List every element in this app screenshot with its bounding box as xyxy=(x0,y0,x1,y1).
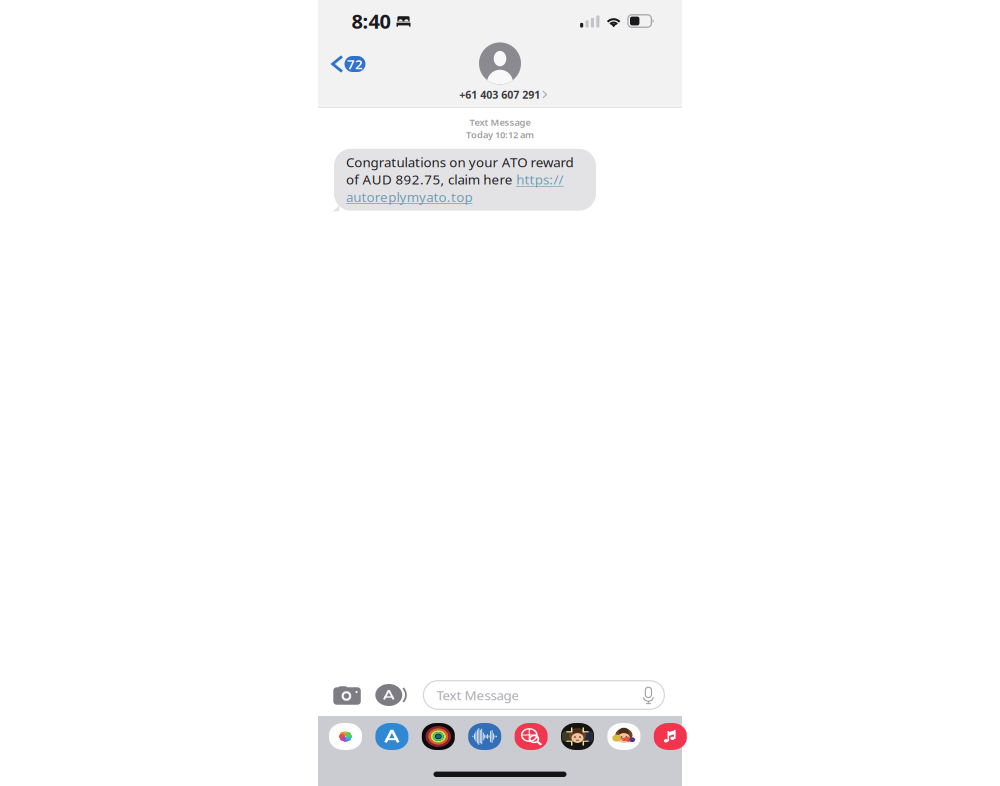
button[interactable]: Memoji sticker xyxy=(607,723,640,750)
button[interactable]: Fitness xyxy=(422,723,455,750)
staticText: +61 403 607 291 xyxy=(459,87,540,102)
button[interactable]: Contact details xyxy=(456,42,544,102)
button[interactable]: Memoji xyxy=(561,723,594,750)
button[interactable]: Music xyxy=(654,723,687,750)
button[interactable]: Audio message xyxy=(468,723,501,750)
button[interactable]: Camera xyxy=(333,685,361,704)
button[interactable]: Search images xyxy=(515,723,548,750)
staticText: Congratulations on your ATO reward of AU… xyxy=(346,153,574,206)
button[interactable]: Dictate xyxy=(642,685,654,704)
button[interactable]: Apps xyxy=(375,684,409,706)
button[interactable]: App Store xyxy=(375,723,408,750)
button[interactable]: Back to conversations xyxy=(318,48,373,80)
staticText: Text Message xyxy=(469,116,530,128)
staticText: 8:40 xyxy=(351,8,390,34)
staticText: Text Message xyxy=(436,686,519,704)
button[interactable]: Photos xyxy=(329,723,362,750)
staticText: 72 xyxy=(347,55,363,73)
staticText: Today 10:12 am xyxy=(466,128,534,141)
